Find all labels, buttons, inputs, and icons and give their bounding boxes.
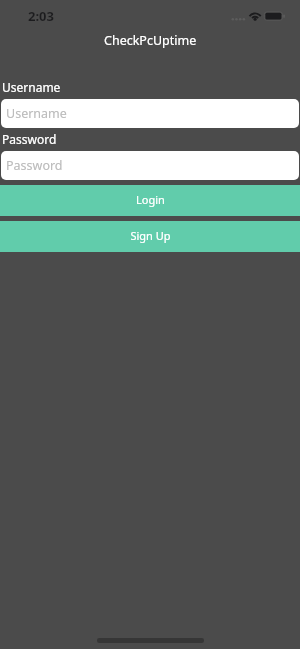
staticText: 2:03 bbox=[28, 7, 54, 25]
staticText: CheckPcUptime bbox=[104, 32, 197, 49]
staticText: Sign Up bbox=[130, 228, 171, 243]
staticText: Login bbox=[136, 192, 165, 207]
button[interactable]: Login bbox=[0, 185, 300, 216]
staticText: Password bbox=[2, 131, 57, 147]
staticText: Username bbox=[6, 105, 67, 122]
button[interactable]: Password bbox=[1, 151, 299, 180]
button[interactable]: Sign Up bbox=[0, 221, 300, 252]
staticText: Username bbox=[2, 79, 61, 95]
staticText: Password bbox=[6, 157, 63, 174]
button[interactable]: Username bbox=[1, 99, 299, 128]
other: Signal, Wi-Fi and battery status bbox=[0, 0, 300, 30]
